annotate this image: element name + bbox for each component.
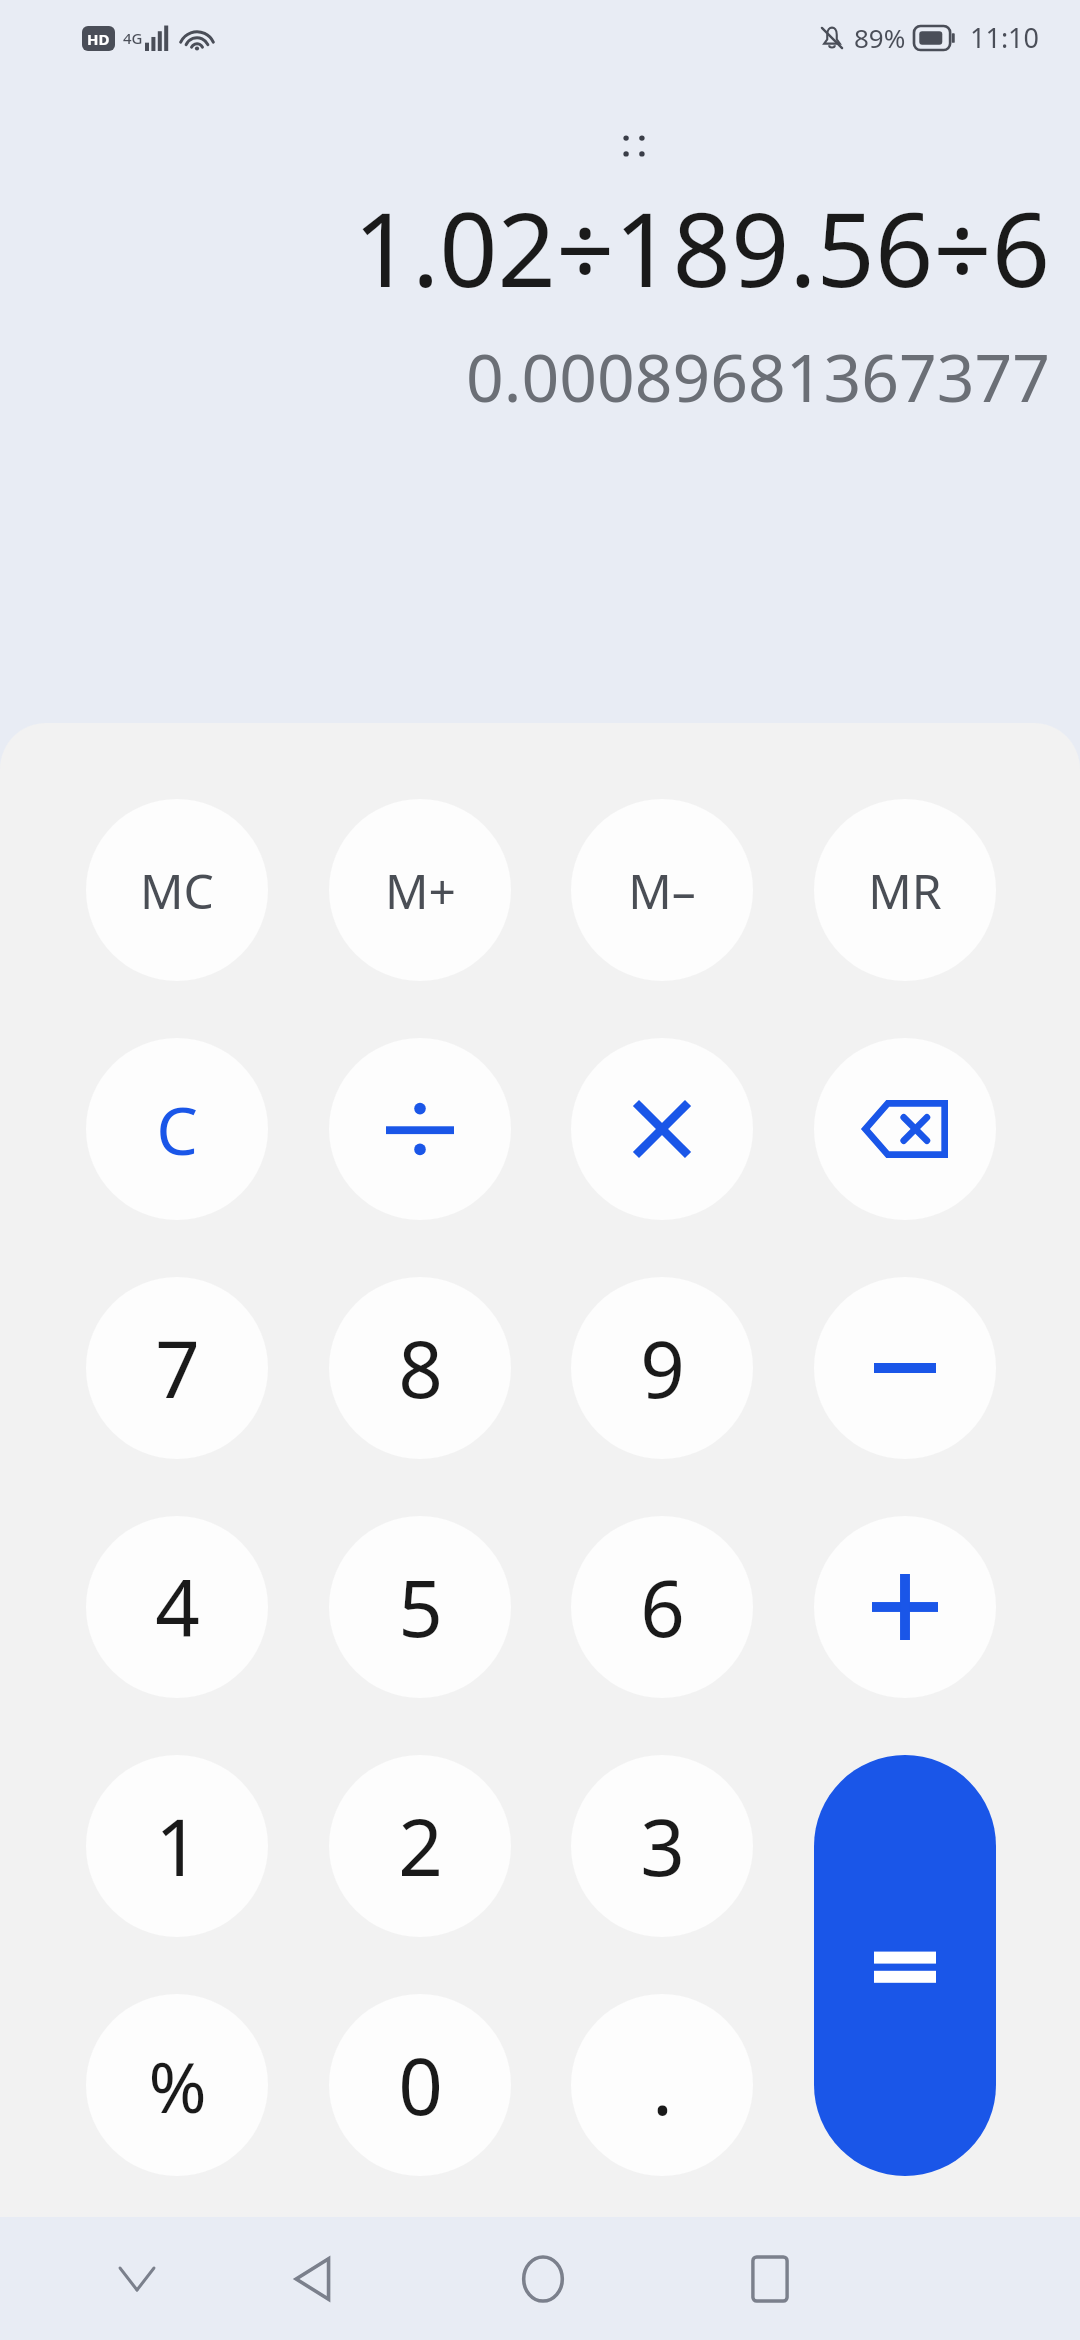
button[interactable]: C [86,1038,268,1220]
staticText: 8 [398,1315,443,1421]
button[interactable]: More options [604,116,664,176]
staticText: 2 [398,1793,443,1899]
staticText: MR [868,858,942,923]
button[interactable]: Hide keyboard [107,2217,167,2340]
button[interactable]: 5 [329,1516,511,1698]
staticText: 1 [155,1793,200,1899]
staticText: 3 [640,1793,685,1899]
staticText: % [148,2038,207,2133]
staticText: . [652,2032,673,2138]
staticText: C [156,1084,198,1174]
staticText: 89% [854,20,906,55]
staticText: MC [140,858,214,923]
button[interactable]: Backspace [814,1038,996,1220]
button[interactable]: 6 [571,1516,753,1698]
button[interactable]: 3 [571,1755,753,1937]
button[interactable]: M– [571,799,753,981]
button[interactable]: Recents [740,2217,800,2340]
button[interactable]: 0 [329,1994,511,2176]
staticText: 1.02÷189.56÷6 [353,178,1050,317]
staticText: 0 [398,2032,443,2138]
staticText: 6 [640,1554,685,1660]
button[interactable]: M+ [329,799,511,981]
button[interactable]: % [86,1994,268,2176]
button[interactable]: . [571,1994,753,2176]
button[interactable]: 1 [86,1755,268,1937]
button[interactable]: 9 [571,1277,753,1459]
staticText: 0.00089681367377 [466,331,1050,421]
staticText: HD [87,29,110,49]
button[interactable]: Divide [329,1038,511,1220]
button[interactable]: 7 [86,1277,268,1459]
staticText: M– [628,858,696,923]
button[interactable]: Equals [814,1755,996,2176]
staticText: 4 [155,1554,200,1660]
staticText: 11:10 [970,19,1040,56]
button[interactable]: MC [86,799,268,981]
button[interactable]: Multiply [571,1038,753,1220]
button[interactable]: 2 [329,1755,511,1937]
staticText: 7 [155,1315,200,1421]
staticText: 5 [398,1554,443,1660]
button[interactable]: MR [814,799,996,981]
staticText: M+ [385,858,456,923]
staticText: 9 [640,1315,685,1421]
button[interactable]: Back [282,2217,342,2340]
button[interactable]: 4 [86,1516,268,1698]
staticText: 4G [123,28,143,48]
button[interactable]: 8 [329,1277,511,1459]
button[interactable]: Plus [814,1516,996,1698]
button[interactable]: Minus [814,1277,996,1459]
button[interactable]: Home [513,2217,573,2340]
